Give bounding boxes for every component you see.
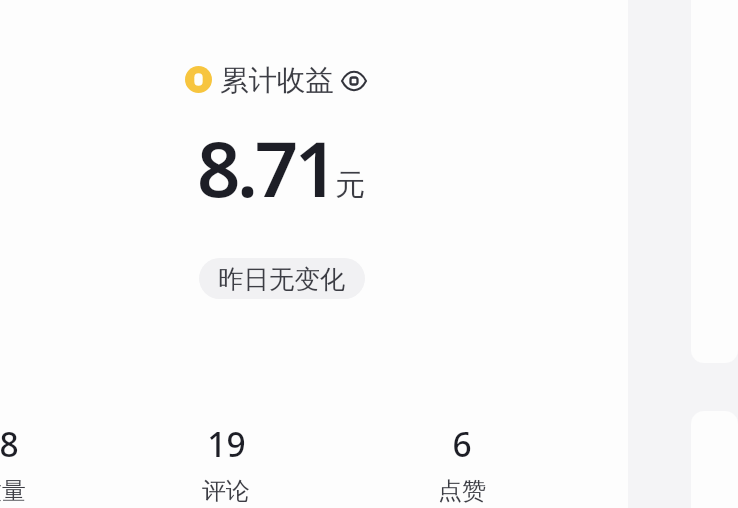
- staticText: 昨日无变化: [218, 263, 346, 295]
- staticText: 累计收益: [220, 63, 334, 99]
- staticText: 238: [0, 421, 19, 467]
- staticText: 8.71: [197, 116, 335, 220]
- button[interactable]: 6: [344, 421, 580, 506]
- button[interactable]: 238: [0, 421, 108, 506]
- staticText: 6: [452, 421, 472, 467]
- button[interactable]: 累计收益: [180, 58, 370, 104]
- other: Hide earnings: [341, 69, 367, 93]
- staticText: 点赞: [438, 476, 486, 506]
- staticText: 元: [335, 166, 365, 204]
- button[interactable]: 昨日无变化: [199, 258, 365, 299]
- staticText: 评论: [202, 476, 250, 506]
- staticText: 播放量: [0, 476, 26, 506]
- staticText: 19: [207, 421, 246, 467]
- button[interactable]: 19: [108, 421, 344, 506]
